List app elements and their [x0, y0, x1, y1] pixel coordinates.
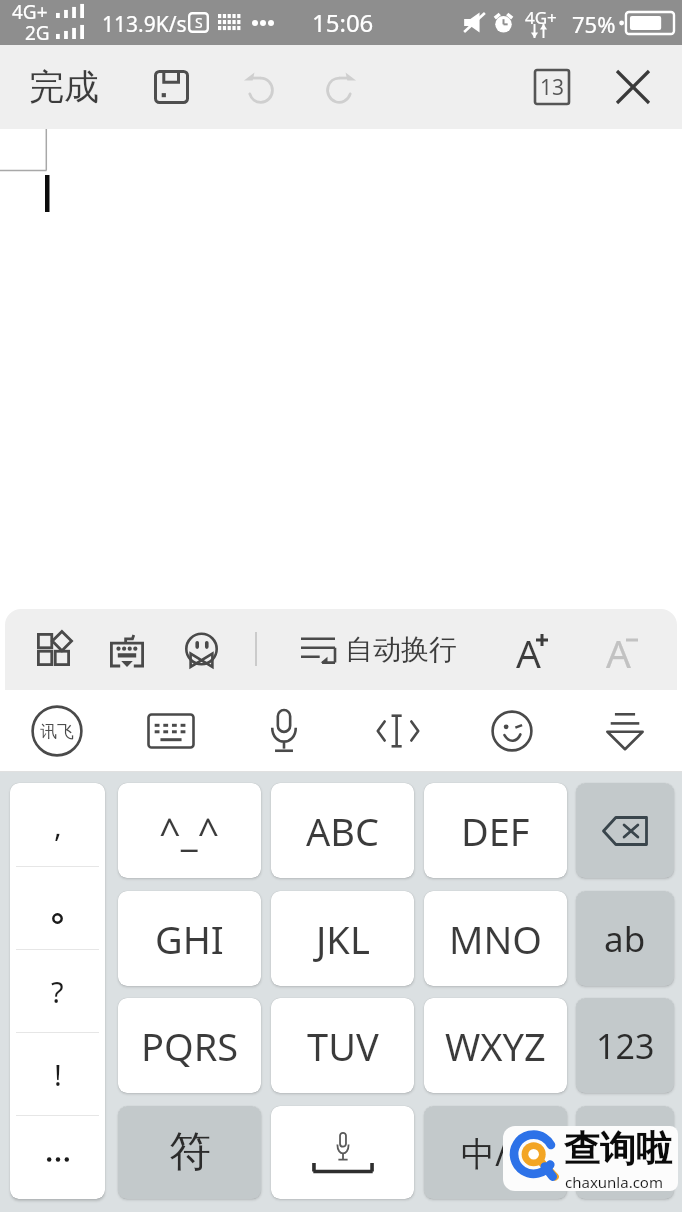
button[interactable]: , — [10, 783, 105, 867]
staticText: 123 — [596, 1023, 655, 1069]
staticText: A — [516, 626, 541, 674]
button[interactable]: Increase font size — [502, 609, 564, 690]
button[interactable]: 123 — [576, 998, 674, 1093]
button[interactable]: 符 — [118, 1106, 261, 1199]
button[interactable]: TUV — [271, 998, 414, 1093]
button[interactable]: MNO — [424, 891, 567, 986]
staticText: GHI — [155, 913, 224, 965]
staticText: ab — [604, 915, 646, 963]
staticText: 2G — [25, 20, 50, 46]
staticText: TUV — [307, 1020, 379, 1072]
button[interactable]: DEF — [424, 783, 567, 878]
button[interactable]: Sticker — [171, 609, 231, 690]
button[interactable]: Keyboard layout — [138, 698, 204, 764]
button[interactable]: ABC — [271, 783, 414, 878]
staticText: 符 — [169, 1126, 211, 1179]
button[interactable]: Decrease font size — [592, 609, 654, 690]
button[interactable]: ab — [576, 891, 674, 986]
staticText: ? — [51, 972, 64, 1011]
button[interactable]: Space — [271, 1106, 414, 1199]
button[interactable] — [10, 1116, 105, 1199]
staticText: ^_^ — [159, 805, 220, 857]
button[interactable]: JKL — [271, 891, 414, 986]
button[interactable]: ! — [10, 1033, 105, 1116]
button[interactable]: Panel — [23, 609, 83, 690]
button[interactable]: Save — [136, 45, 206, 129]
staticText: 4G+ — [525, 6, 557, 29]
staticText: ! — [54, 1055, 62, 1094]
staticText: ABC — [306, 805, 379, 857]
button[interactable]: Enter — [576, 1106, 674, 1199]
staticText: 中/A — [461, 1130, 530, 1176]
staticText: 讯飞 — [40, 721, 74, 742]
staticText: 15:06 — [312, 6, 374, 39]
staticText: chaxunla.com — [565, 1172, 663, 1191]
staticText: A — [606, 626, 631, 674]
staticText: 自动换行 — [345, 632, 457, 667]
button[interactable]: Move cursor — [365, 698, 431, 764]
button[interactable]: 中/A — [424, 1106, 567, 1199]
button[interactable]: 完成 — [14, 45, 114, 129]
button[interactable]: ^_^ — [118, 783, 261, 878]
button[interactable]: 自动换行 — [295, 609, 485, 690]
button[interactable]: Input method logo — [24, 698, 90, 764]
staticText: 查询啦 — [564, 1126, 672, 1171]
staticText: DEF — [461, 805, 530, 857]
button[interactable]: PQRS — [118, 998, 261, 1093]
staticText: 113.9K/s — [102, 10, 187, 39]
button[interactable]: Hide keyboard — [592, 698, 658, 764]
staticText: 完成 — [29, 65, 99, 109]
button[interactable]: Undo — [223, 45, 293, 129]
staticText: 13 — [540, 73, 565, 102]
staticText: 4G+ — [12, 0, 48, 25]
staticText: JKL — [316, 913, 370, 965]
staticText: 75% — [572, 9, 616, 39]
button[interactable]: WXYZ — [424, 998, 567, 1093]
staticText: S — [195, 13, 203, 32]
button[interactable]: ? — [10, 950, 105, 1033]
button[interactable]: Character count — [517, 45, 587, 129]
staticText: MNO — [449, 913, 543, 965]
button[interactable]: Close — [598, 45, 668, 129]
button[interactable] — [10, 867, 105, 950]
staticText: WXYZ — [445, 1020, 546, 1072]
button[interactable]: Backspace — [576, 783, 674, 878]
button[interactable]: Redo — [306, 45, 376, 129]
button[interactable]: GHI — [118, 891, 261, 986]
button[interactable]: Handwriting — [97, 609, 157, 690]
button[interactable]: Emoji — [479, 698, 545, 764]
staticText: PQRS — [141, 1020, 239, 1072]
button[interactable]: Voice input — [251, 698, 317, 764]
staticText: , — [54, 806, 62, 845]
